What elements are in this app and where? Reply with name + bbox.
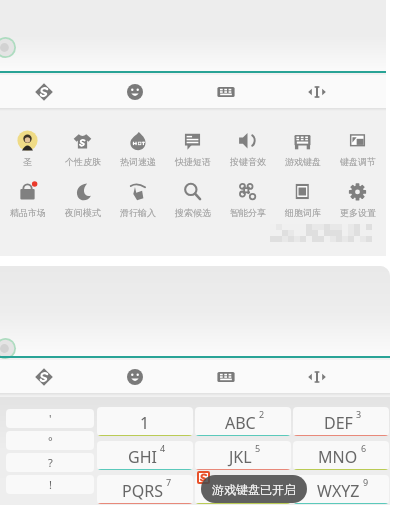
staticText: 7 — [166, 476, 172, 488]
staticText: 按键音效 — [230, 156, 266, 167]
button[interactable] — [195, 475, 291, 504]
staticText: ! — [49, 477, 52, 492]
button[interactable]: 滑行输入 — [110, 180, 165, 224]
staticText: 夜间模式 — [65, 207, 101, 218]
button[interactable]: 热词速递 — [110, 129, 165, 173]
button[interactable]: 按键音效 — [220, 129, 275, 173]
staticText: ' — [49, 411, 52, 426]
button[interactable]: Keyboard layout — [180, 360, 271, 393]
staticText: 更多设置 — [340, 207, 376, 218]
staticText: DEF — [324, 412, 353, 434]
staticText: PQRS — [122, 480, 163, 502]
button[interactable]: ° — [6, 431, 94, 450]
button[interactable]: 智能分享 — [220, 180, 275, 224]
staticText: 键盘调节 — [340, 156, 376, 167]
button[interactable]: GHI — [97, 441, 193, 470]
button[interactable]: ABC — [195, 407, 291, 436]
staticText: 1 — [140, 412, 150, 434]
button[interactable]: MNO — [293, 441, 389, 470]
button[interactable]: 更多设置 — [330, 180, 385, 224]
button[interactable]: ' — [6, 409, 94, 428]
staticText: 9 — [363, 476, 369, 488]
staticText: JKL — [229, 446, 252, 468]
staticText: ? — [48, 455, 53, 470]
staticText: 3 — [356, 408, 362, 420]
staticText: 智能分享 — [230, 207, 266, 218]
button[interactable]: Move cursor — [271, 360, 362, 393]
button[interactable]: 细胞词库 — [275, 180, 330, 224]
button[interactable]: 快捷短语 — [165, 129, 220, 173]
button[interactable]: ? — [6, 453, 94, 472]
button[interactable]: 游戏键盘 — [275, 129, 330, 173]
staticText: 滑行输入 — [120, 207, 156, 218]
button[interactable]: 1 — [97, 407, 193, 436]
staticText: 搜索候选 — [175, 207, 211, 218]
button[interactable]: Emoji — [89, 360, 180, 393]
staticText: ° — [48, 433, 53, 448]
button[interactable]: JKL — [195, 441, 291, 470]
staticText: ABC — [225, 412, 256, 434]
staticText: GHI — [128, 446, 157, 468]
staticText: 4 — [160, 442, 166, 454]
staticText: 个性皮肤 — [65, 156, 101, 167]
button[interactable]: Move cursor — [271, 75, 362, 108]
button[interactable]: ! — [6, 475, 94, 494]
staticText: MNO — [318, 446, 358, 468]
button[interactable]: 圣 — [0, 129, 55, 173]
button[interactable]: Keyboard layout — [180, 75, 271, 108]
staticText: 6 — [361, 442, 367, 454]
button[interactable]: 搜索候选 — [165, 180, 220, 224]
staticText: 2 — [259, 408, 265, 420]
staticText: 细胞词库 — [285, 207, 321, 218]
button[interactable]: 夜间模式 — [55, 180, 110, 224]
button[interactable]: 精品市场 — [0, 180, 55, 224]
staticText: 快捷短语 — [175, 156, 211, 167]
button[interactable]: DEF — [293, 407, 389, 436]
button[interactable]: Sogou input method — [0, 360, 89, 393]
staticText: 圣 — [23, 156, 32, 167]
button[interactable]: WXYZ — [293, 475, 389, 504]
staticText: 游戏键盘 — [285, 156, 321, 167]
staticText: 热词速递 — [120, 156, 156, 167]
staticText: 5 — [255, 442, 261, 454]
button[interactable]: PQRS — [97, 475, 193, 504]
staticText: 精品市场 — [10, 207, 46, 218]
staticText: 游戏键盘已开启 — [212, 482, 296, 497]
staticText: WXYZ — [317, 480, 360, 502]
button[interactable]: Emoji — [89, 75, 180, 108]
button[interactable]: 键盘调节 — [330, 129, 385, 173]
button[interactable]: Sogou input method — [0, 75, 89, 108]
button[interactable]: 个性皮肤 — [55, 129, 110, 173]
